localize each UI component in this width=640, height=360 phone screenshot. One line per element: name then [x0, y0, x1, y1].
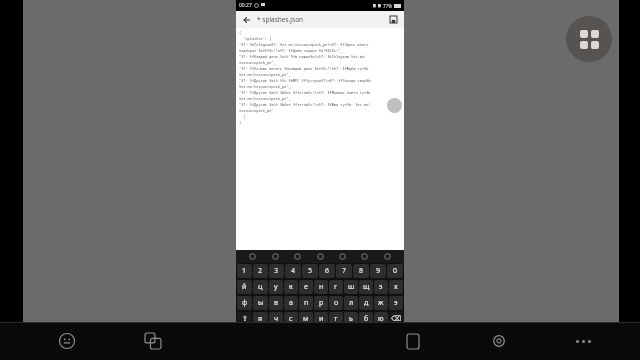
- staticText: к: [289, 282, 293, 292]
- staticText: х: [394, 282, 398, 292]
- staticText: т: [334, 314, 338, 324]
- button[interactable]: Tool 1: [270, 251, 281, 262]
- staticText: 3: [274, 266, 279, 276]
- staticText: д: [364, 298, 369, 308]
- button[interactable]: ы: [253, 296, 268, 310]
- button[interactable]: Tool 0: [247, 251, 258, 262]
- button[interactable]: 0: [387, 264, 403, 278]
- button[interactable]: Save: [387, 13, 400, 26]
- button[interactable]: 2: [253, 264, 268, 278]
- button[interactable]: и: [314, 312, 328, 326]
- button[interactable]: м: [299, 312, 313, 326]
- button[interactable]: Tool 2: [292, 251, 303, 262]
- staticText: resourcepack_pe",: [239, 60, 276, 65]
- button[interactable]: а: [284, 296, 298, 310]
- button[interactable]: 1: [237, 264, 252, 278]
- button[interactable]: 9: [370, 264, 386, 278]
- button[interactable]: в: [269, 296, 283, 310]
- button[interactable]: к: [284, 280, 298, 294]
- staticText: у: [274, 282, 278, 292]
- staticText: я: [258, 314, 263, 324]
- button[interactable]: 3: [269, 264, 284, 278]
- button[interactable]: й: [237, 280, 252, 294]
- button[interactable]: App grid: [566, 16, 612, 62]
- button[interactable]: ь: [344, 312, 358, 326]
- button[interactable]: More: [387, 98, 402, 113]
- staticText: }: [239, 120, 242, 125]
- button[interactable]: о: [329, 296, 343, 310]
- button[interactable]: 6: [319, 264, 335, 278]
- button[interactable]: Translate: [141, 329, 165, 353]
- button[interactable]: ⌫: [389, 312, 403, 326]
- button[interactable]: н: [314, 280, 328, 294]
- button[interactable]: у: [269, 280, 283, 294]
- staticText: ⇧: [242, 315, 248, 323]
- button[interactable]: ц: [253, 280, 268, 294]
- button[interactable]: 4: [285, 264, 301, 278]
- button[interactable]: 5: [302, 264, 318, 278]
- staticText: б: [364, 314, 369, 324]
- staticText: э: [394, 298, 398, 308]
- button[interactable]: 7: [336, 264, 352, 278]
- staticText: "§7~ §fДругие §a®® §fс §bМРС §f§устрой§7…: [239, 78, 373, 83]
- staticText: з: [379, 282, 383, 292]
- button[interactable]: Settings: [487, 329, 511, 353]
- button[interactable]: ф: [237, 296, 252, 310]
- button[interactable]: Tool 3: [315, 251, 326, 262]
- staticText: подборок §a®§f§c!\n§7~ §fДаём скидки §a!…: [239, 48, 343, 53]
- button[interactable]: 8: [353, 264, 369, 278]
- staticText: resourcepack_pe": [239, 108, 274, 113]
- button[interactable]: п: [299, 296, 313, 310]
- staticText: * splashes.json: [257, 15, 304, 24]
- button[interactable]: Clipboard: [402, 329, 426, 353]
- staticText: ]: [239, 114, 246, 119]
- button[interactable]: Emoji: [55, 329, 79, 353]
- staticText: л: [349, 298, 354, 308]
- button[interactable]: д: [359, 296, 373, 310]
- button[interactable]: е: [299, 280, 313, 294]
- button[interactable]: Tool 6: [382, 251, 393, 262]
- staticText: ж: [378, 298, 384, 308]
- button[interactable]: ю: [374, 312, 388, 326]
- button[interactable]: Tool 4: [337, 251, 348, 262]
- button[interactable]: ⇧: [237, 312, 252, 326]
- button[interactable]: р: [314, 296, 328, 310]
- button[interactable]: ж: [374, 296, 388, 310]
- button[interactable]: я: [253, 312, 268, 326]
- staticText: ю: [378, 314, 384, 324]
- staticText: щ: [363, 282, 370, 292]
- staticText: §et.me/resourcepack_pe",: [239, 72, 291, 77]
- staticText: "§7~ §fКаждый день §a®® §fв наших§a\n§7~…: [239, 54, 367, 59]
- button[interactable]: б: [359, 312, 373, 326]
- button[interactable]: ч: [269, 312, 283, 326]
- button[interactable]: Tool 5: [359, 251, 370, 262]
- button[interactable]: э: [389, 296, 403, 310]
- staticText: а: [289, 298, 293, 308]
- staticText: р: [319, 298, 324, 308]
- staticText: §et.me/resourcepack_pe",: [239, 84, 291, 89]
- button[interactable]: ш: [344, 280, 358, 294]
- staticText: о: [334, 298, 339, 308]
- button[interactable]: Back: [240, 13, 253, 26]
- button[interactable]: г: [329, 280, 343, 294]
- staticText: ш: [348, 282, 355, 292]
- button[interactable]: щ: [359, 280, 373, 294]
- button[interactable]: т: [329, 312, 343, 326]
- button[interactable]: с: [284, 312, 298, 326]
- button[interactable]: з: [374, 280, 388, 294]
- button[interactable]: л: [344, 296, 358, 310]
- staticText: г: [334, 282, 338, 292]
- staticText: 00:27: [239, 2, 252, 9]
- button[interactable]: More options: [570, 334, 597, 349]
- button[interactable]: х: [389, 280, 403, 294]
- staticText: й: [242, 282, 247, 292]
- staticText: и: [319, 314, 324, 324]
